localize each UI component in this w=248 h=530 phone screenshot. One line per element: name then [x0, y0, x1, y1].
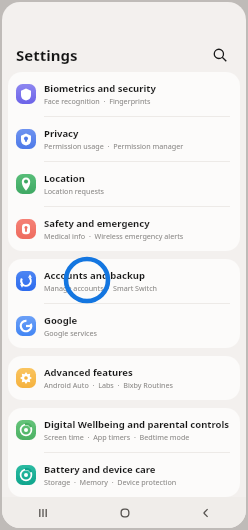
button[interactable]: Location	[8, 162, 240, 206]
button[interactable]: Home	[84, 497, 165, 528]
staticText: Screen time · App timers · Bedtime mode	[44, 432, 190, 442]
button[interactable]: Digital Wellbeing and parental controls	[8, 408, 240, 452]
button[interactable]: Accounts and backup	[8, 259, 240, 303]
button[interactable]: Search	[208, 43, 232, 67]
staticText: Privacy	[44, 127, 79, 140]
staticText: Permission usage · Permission manager	[44, 141, 184, 151]
staticText: Face recognition · Fingerprints	[44, 96, 151, 106]
button[interactable]: Google	[8, 304, 240, 348]
staticText: Manage accounts · Smart Switch	[44, 283, 158, 293]
staticText: Battery and device care	[44, 463, 156, 476]
button[interactable]: Biometrics and security	[8, 72, 240, 116]
staticText: Google services	[44, 328, 98, 338]
staticText: Biometrics and security	[44, 82, 156, 95]
staticText: Safety and emergency	[44, 217, 150, 230]
staticText: Digital Wellbeing and parental controls	[44, 418, 230, 431]
staticText: Storage · Memory · Device protection	[44, 477, 177, 487]
button[interactable]: Back	[165, 497, 246, 528]
staticText: Location requests	[44, 186, 104, 196]
staticText: Accounts and backup	[44, 269, 146, 282]
staticText: Medical info · Wireless emergency alerts	[44, 231, 184, 241]
staticText: Settings	[16, 45, 78, 65]
button[interactable]: Advanced features	[8, 356, 240, 400]
staticText: Advanced features	[44, 366, 133, 379]
button[interactable]: Recents	[2, 497, 84, 528]
button[interactable]: Safety and emergency	[8, 207, 240, 251]
button[interactable]: Privacy	[8, 117, 240, 161]
button[interactable]: Battery and device care	[8, 453, 240, 497]
staticText: Google	[44, 314, 78, 327]
staticText: Location	[44, 172, 85, 185]
staticText: Android Auto · Labs · Bixby Routines	[44, 380, 174, 390]
